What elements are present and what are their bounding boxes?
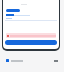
button[interactable]: App icon bbox=[6, 59, 9, 62]
button[interactable] bbox=[6, 9, 20, 12]
button[interactable] bbox=[5, 40, 57, 45]
